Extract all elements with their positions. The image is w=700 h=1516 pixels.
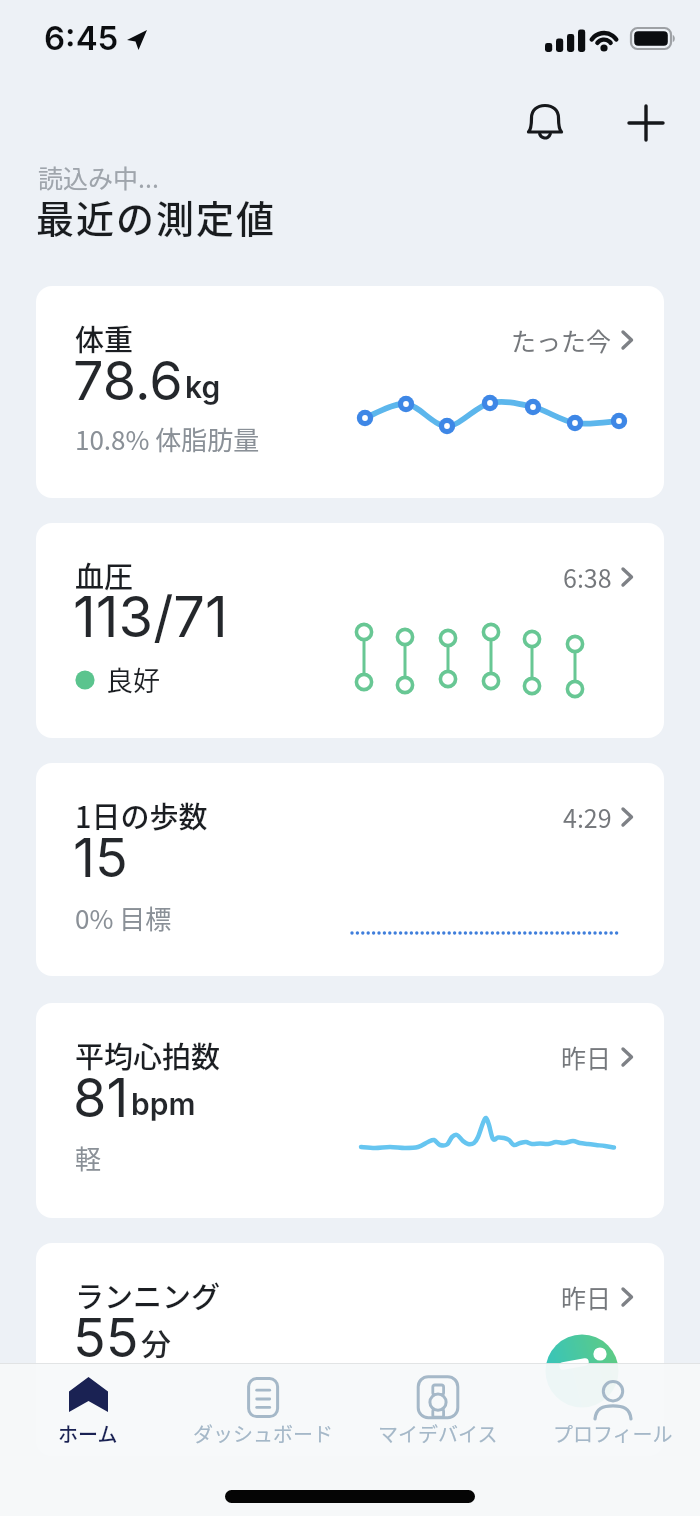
button[interactable]: ランニング	[36, 1243, 664, 1456]
staticText: 血圧	[75, 554, 134, 596]
staticText: 体重	[75, 317, 134, 359]
staticText: 10.8% 体脂肪量	[75, 420, 260, 458]
button[interactable]: 体重	[36, 286, 664, 498]
staticText: ダッシュボード	[193, 1419, 333, 1448]
staticText: 最近の測定値	[36, 189, 277, 244]
button[interactable]: 平均心拍数	[36, 1003, 664, 1218]
staticText: kg	[185, 369, 221, 405]
staticText: 0% 目標	[75, 899, 172, 937]
staticText: ホーム	[58, 1419, 118, 1448]
staticText: bpm	[131, 1086, 196, 1122]
staticText: 15	[73, 825, 128, 890]
button[interactable]: 1日の歩数	[36, 763, 664, 976]
staticText: たった今	[511, 322, 612, 358]
staticText: 昨日	[561, 1279, 612, 1315]
staticText: 55	[73, 1305, 139, 1370]
staticText: 分	[141, 1320, 171, 1363]
staticText: 81	[73, 1065, 129, 1130]
staticText: 良好	[106, 660, 160, 699]
staticText: 6:45	[44, 18, 119, 58]
button[interactable]: マイデバイス	[350, 1363, 525, 1516]
staticText: 軽	[75, 1139, 102, 1177]
staticText: 読込み中...	[38, 159, 159, 195]
staticText: 昨日	[561, 1039, 612, 1075]
button[interactable]: ダッシュボード	[175, 1363, 350, 1516]
staticText: プロフィール	[553, 1419, 673, 1448]
staticText: 4:29	[563, 799, 612, 835]
staticText: 1日の歩数	[75, 794, 208, 836]
button[interactable]: ホーム	[0, 1363, 175, 1516]
staticText: ランニング	[75, 1274, 221, 1316]
button[interactable]: プロフィール	[525, 1363, 700, 1516]
staticText: 78.6	[73, 348, 183, 413]
button[interactable]	[521, 98, 569, 146]
staticText: 平均心拍数	[75, 1034, 221, 1076]
staticText: 113/71	[73, 583, 228, 651]
button[interactable]: 血圧	[36, 523, 664, 738]
staticText: マイデバイス	[378, 1419, 498, 1448]
button[interactable]	[622, 99, 670, 147]
staticText: 6:38	[563, 559, 612, 595]
